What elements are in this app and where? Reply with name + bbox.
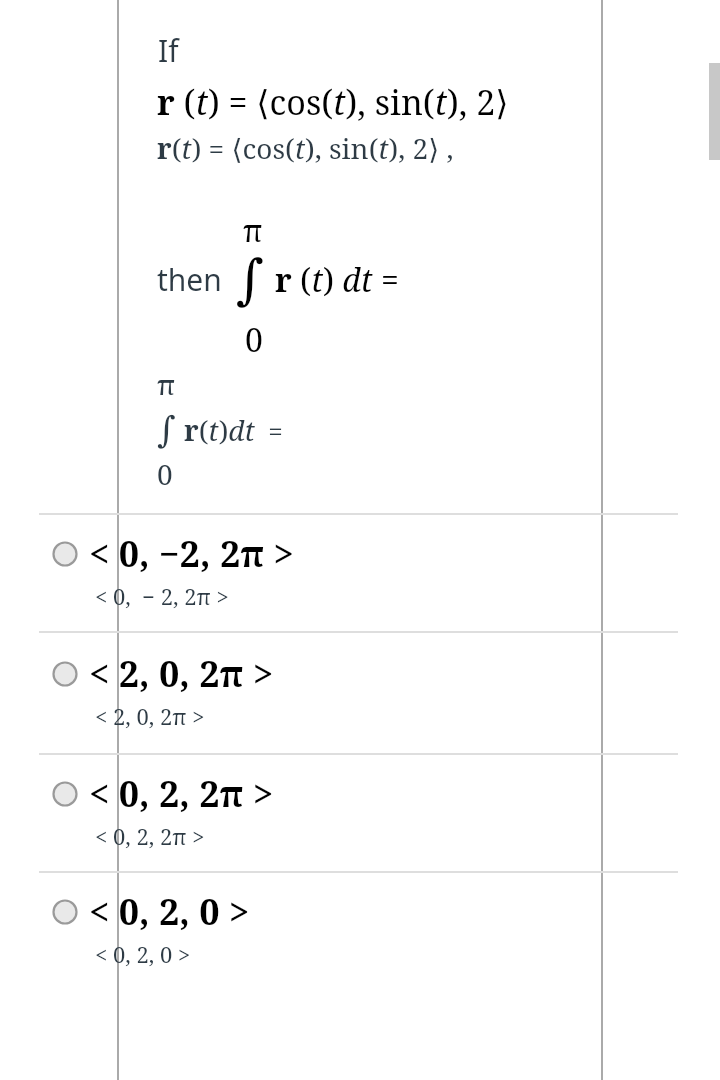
staticText: r(t) = ⟨cos(t), sin(t), 2⟩ ,	[157, 129, 454, 167]
staticText: π	[243, 210, 263, 251]
staticText: < 0, 2, 0 >	[95, 939, 191, 969]
staticText: < 0, 2, 2π >	[89, 769, 274, 818]
button[interactable]: < 0, 2, 0 >	[0, 871, 720, 989]
staticText: < 0, 2, 2π >	[95, 821, 205, 851]
staticText: 0	[245, 318, 263, 362]
staticText: < 2, 0, 2π >	[95, 701, 205, 731]
staticText: r (t) dt =	[275, 258, 399, 302]
staticText: then	[157, 259, 222, 300]
staticText: < 2, 0, 2π >	[89, 649, 274, 698]
staticText: < 0, − 2, 2π >	[95, 581, 229, 611]
button[interactable]: < 0, −2, 2π >	[0, 513, 720, 631]
staticText: If	[158, 30, 179, 71]
staticText: < 0, 2, 0 >	[89, 887, 250, 936]
staticText: 0	[157, 455, 173, 493]
staticText: r(t)dt =	[184, 411, 283, 449]
staticText: < 0, −2, 2π >	[89, 529, 294, 578]
button[interactable]: < 2, 0, 2π >	[0, 631, 720, 753]
staticText: ∫	[157, 409, 176, 451]
staticText: ∫	[236, 248, 265, 311]
staticText: π	[157, 365, 176, 403]
staticText: r (t) = ⟨cos(t), sin(t), 2⟩	[157, 79, 509, 125]
button[interactable]: < 0, 2, 2π >	[0, 753, 720, 871]
